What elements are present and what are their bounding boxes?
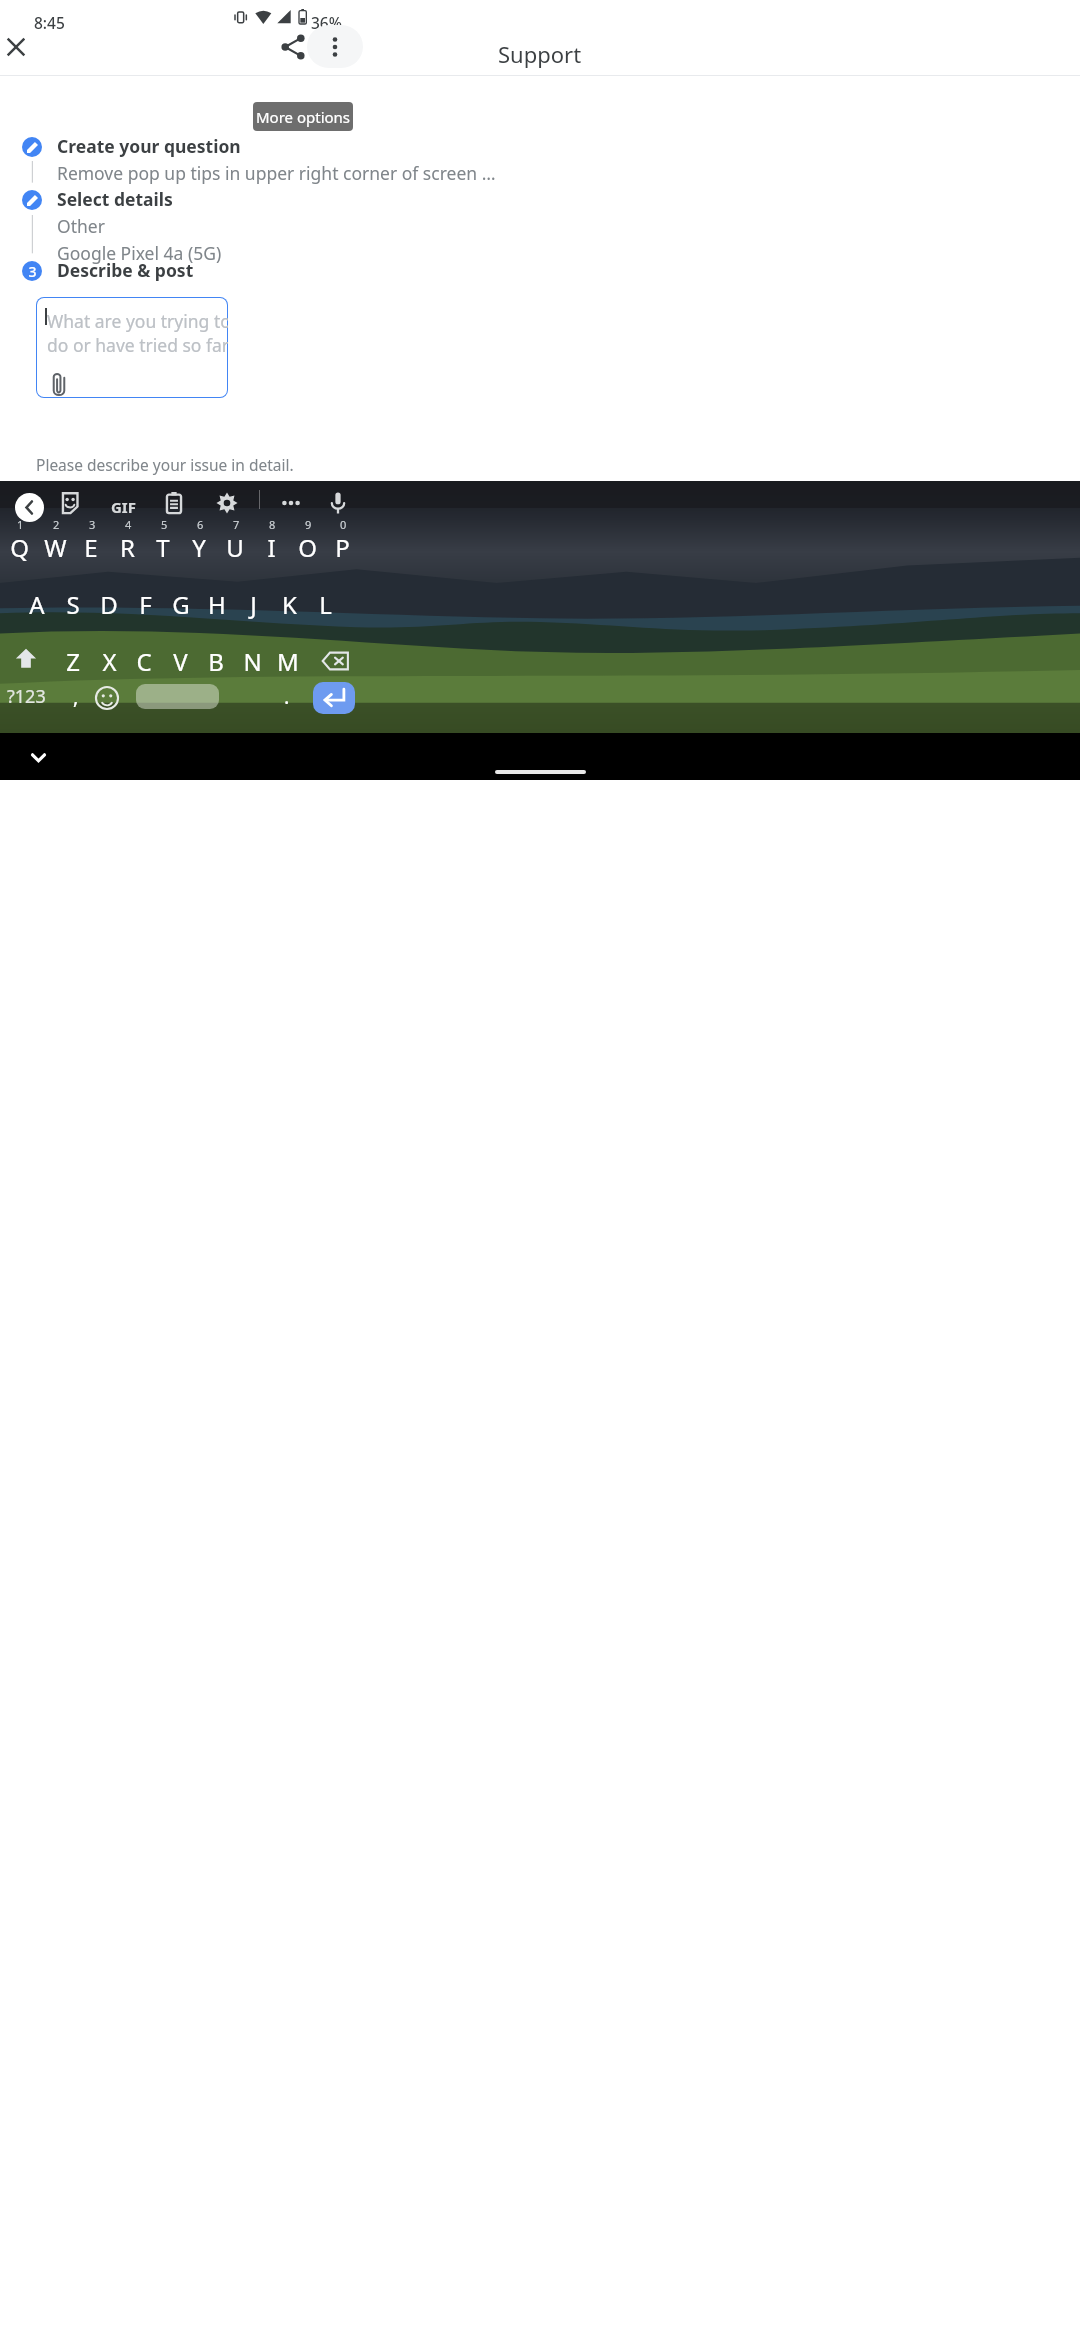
button[interactable] <box>272 581 306 635</box>
button[interactable]: Clipboard <box>150 479 198 527</box>
staticText: P <box>335 531 350 564</box>
staticText: 5 <box>161 517 168 532</box>
button[interactable]: More options <box>307 25 363 68</box>
staticText: D <box>100 588 118 621</box>
staticText: R <box>120 531 135 564</box>
staticText: 7 <box>233 517 240 532</box>
button[interactable] <box>92 638 126 692</box>
staticText: What are you trying to do or have tried … <box>47 309 228 357</box>
button[interactable]: 3 <box>0 261 1080 285</box>
button[interactable]: Voice input <box>314 479 362 527</box>
staticText: E <box>84 531 98 564</box>
button[interactable] <box>290 518 324 572</box>
button[interactable]: . <box>273 681 300 711</box>
staticText: 1 <box>17 517 24 532</box>
staticText: S <box>66 588 80 621</box>
button[interactable] <box>56 638 90 692</box>
staticText: 4 <box>125 517 132 532</box>
button[interactable]: Attach file <box>40 366 77 398</box>
staticText: Google Pixel 4a (5G) <box>57 241 222 265</box>
button[interactable]: Select details <box>0 190 1080 268</box>
staticText: . <box>284 683 290 710</box>
staticText: 9 <box>305 517 312 532</box>
staticText: 36% <box>311 12 342 33</box>
button[interactable] <box>271 638 305 692</box>
staticText: Select details <box>57 187 173 211</box>
button[interactable]: Backspace <box>313 639 356 682</box>
staticText: N <box>243 645 262 678</box>
button[interactable] <box>128 581 162 635</box>
button[interactable] <box>218 518 252 572</box>
button[interactable] <box>146 518 180 572</box>
staticText: , <box>73 683 79 710</box>
button[interactable]: GIF <box>111 497 136 517</box>
button[interactable] <box>74 518 108 572</box>
staticText: J <box>250 588 257 621</box>
button[interactable] <box>2 518 36 572</box>
button[interactable] <box>254 518 288 572</box>
staticText: Describe & post <box>57 258 194 282</box>
button[interactable]: Hide keyboard <box>27 746 50 769</box>
button[interactable] <box>163 638 197 692</box>
staticText: H <box>208 588 226 621</box>
staticText: 3 <box>89 517 96 532</box>
button[interactable] <box>308 581 342 635</box>
staticText: Create your question <box>57 134 241 158</box>
button[interactable] <box>110 518 144 572</box>
staticText: More options <box>256 107 351 127</box>
staticText: Remove pop up tips in upper right corner… <box>57 161 496 185</box>
staticText: U <box>226 531 244 564</box>
staticText: 8 <box>269 517 276 532</box>
button[interactable]: What are you trying to do or have tried … <box>36 297 228 398</box>
button[interactable] <box>200 581 234 635</box>
staticText: O <box>298 531 317 564</box>
staticText: W <box>44 531 67 564</box>
staticText: B <box>208 645 224 678</box>
button[interactable]: Enter <box>313 682 355 714</box>
button[interactable]: Close <box>0 25 44 68</box>
button[interactable]: Shift <box>7 639 44 676</box>
staticText: Other <box>57 214 105 238</box>
button[interactable]: Back <box>15 493 44 522</box>
button[interactable]: Settings <box>203 479 251 527</box>
button[interactable] <box>199 638 233 692</box>
button[interactable]: Stickers <box>46 479 94 527</box>
staticText: Q <box>10 531 29 564</box>
staticText: F <box>139 588 152 621</box>
staticText: K <box>282 588 297 621</box>
staticText: Please describe your issue in detail. <box>36 454 294 475</box>
staticText: C <box>136 645 152 678</box>
button[interactable] <box>38 518 72 572</box>
button[interactable] <box>235 638 269 692</box>
staticText: L <box>319 588 332 621</box>
button[interactable]: Share <box>265 25 321 68</box>
staticText: 6 <box>197 517 204 532</box>
button[interactable] <box>20 581 54 635</box>
button[interactable]: ?123 <box>3 681 50 711</box>
button[interactable] <box>56 581 90 635</box>
staticText: I <box>267 531 276 564</box>
staticText: Support <box>498 39 582 69</box>
staticText: 0 <box>340 517 347 532</box>
button[interactable] <box>92 581 126 635</box>
staticText: G <box>172 588 190 621</box>
button[interactable]: , <box>62 681 89 711</box>
button[interactable] <box>127 638 161 692</box>
button[interactable]: Space <box>136 684 219 709</box>
staticText: X <box>102 645 117 678</box>
staticText: 8:45 <box>34 12 65 33</box>
button[interactable]: More <box>267 479 315 527</box>
staticText: Z <box>66 645 80 678</box>
staticText: 2 <box>53 517 60 532</box>
staticText: 3 <box>28 262 37 281</box>
button[interactable]: Create your question <box>0 137 1080 188</box>
staticText: V <box>173 645 188 678</box>
button[interactable] <box>325 518 359 572</box>
button[interactable] <box>182 518 216 572</box>
staticText: A <box>29 588 45 621</box>
staticText: T <box>156 531 170 564</box>
button[interactable] <box>164 581 198 635</box>
staticText: M <box>277 645 299 678</box>
button[interactable] <box>236 581 270 635</box>
button[interactable]: Emoji <box>90 681 123 714</box>
